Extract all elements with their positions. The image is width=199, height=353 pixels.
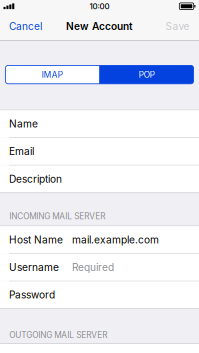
staticText: Required [72, 261, 114, 273]
staticText: OUTGOING MAIL SERVER [9, 330, 107, 340]
staticText: 10:00 [89, 1, 109, 11]
button[interactable]: Username [0, 254, 199, 281]
button[interactable]: Host Name [0, 226, 199, 253]
staticText: Description [9, 173, 62, 185]
staticText: Cancel [9, 20, 42, 32]
staticText: Host Name [9, 234, 63, 246]
staticText: Password [9, 289, 55, 301]
button[interactable]: POP [100, 65, 193, 84]
staticText: INCOMING MAIL SERVER [9, 211, 105, 221]
button[interactable]: Save [159, 12, 195, 40]
button[interactable]: IMAP [5, 65, 99, 84]
button[interactable]: Name [0, 110, 199, 137]
staticText: mail.example.com [72, 234, 159, 246]
staticText: Name [9, 118, 38, 130]
staticText: New Account [66, 20, 133, 32]
button[interactable]: Cancel [3, 12, 48, 40]
staticText: POP [139, 69, 155, 80]
staticText: Email [9, 145, 34, 158]
staticText: IMAP [42, 69, 63, 80]
button[interactable]: Password [0, 281, 199, 308]
button[interactable]: Description [0, 165, 199, 192]
staticText: Username [9, 261, 59, 273]
staticText: Save [165, 20, 189, 32]
button[interactable]: Email [0, 138, 199, 165]
